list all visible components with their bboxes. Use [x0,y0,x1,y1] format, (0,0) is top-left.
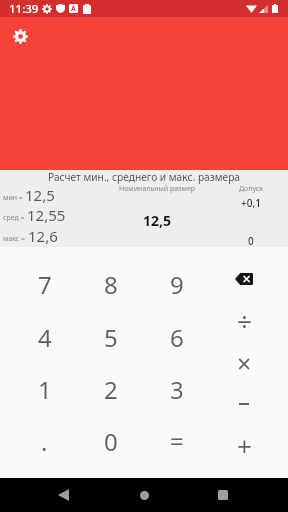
button[interactable]: 7 [11,258,78,311]
staticText: макс = [3,234,26,244]
staticText: 3 [170,373,184,406]
button[interactable]: 0 [78,415,144,467]
staticText: 1 [38,373,52,406]
staticText: Допуск [239,184,264,194]
staticText: 11:39 [9,1,39,17]
staticText: 12,5 [25,185,55,205]
button[interactable]: 9 [144,258,210,311]
staticText: +0,1 [241,196,261,210]
button[interactable]: Backspace [210,258,278,299]
button[interactable]: 4 [11,311,78,363]
staticText: = [170,424,184,457]
button[interactable]: = [144,415,210,467]
staticText: 8 [104,268,118,301]
staticText: Номинальный размер [119,184,196,194]
button[interactable]: 3 [144,363,210,415]
staticText: 12,55 [27,205,66,225]
button[interactable]: Back [45,478,81,512]
button[interactable]: . [11,415,78,467]
button[interactable]: 5 [78,311,144,363]
staticText: 12,6 [28,226,58,246]
staticText: 7 [38,268,52,301]
staticText: 6 [170,321,184,354]
staticText: + [237,428,252,463]
staticText: . [41,425,48,458]
staticText: 4 [38,321,52,354]
staticText: 2 [104,373,118,406]
button[interactable]: 2 [78,363,144,415]
button[interactable]: Minus [210,383,278,425]
staticText: сред = [3,213,25,223]
staticText: × [237,346,252,380]
button[interactable]: 1 [11,363,78,415]
staticText: Расчет мин., среднего и макс. размера [0,170,288,184]
staticText: 12,5 [143,211,172,230]
staticText: 9 [170,268,184,301]
button[interactable]: ÷ [210,299,278,341]
staticText: A [71,4,76,13]
staticText: 0 [104,425,118,458]
staticText: ÷ [237,303,252,338]
button[interactable]: Settings [9,25,31,47]
button[interactable]: × [210,341,278,383]
button[interactable]: Recents [205,478,241,512]
button[interactable]: 6 [144,311,210,363]
staticText: 5 [104,321,118,354]
staticText: 0 [248,234,254,248]
button[interactable]: Home [126,478,162,512]
staticText: мин = [3,193,23,203]
button[interactable]: + [210,425,278,467]
button[interactable]: 8 [78,258,144,311]
